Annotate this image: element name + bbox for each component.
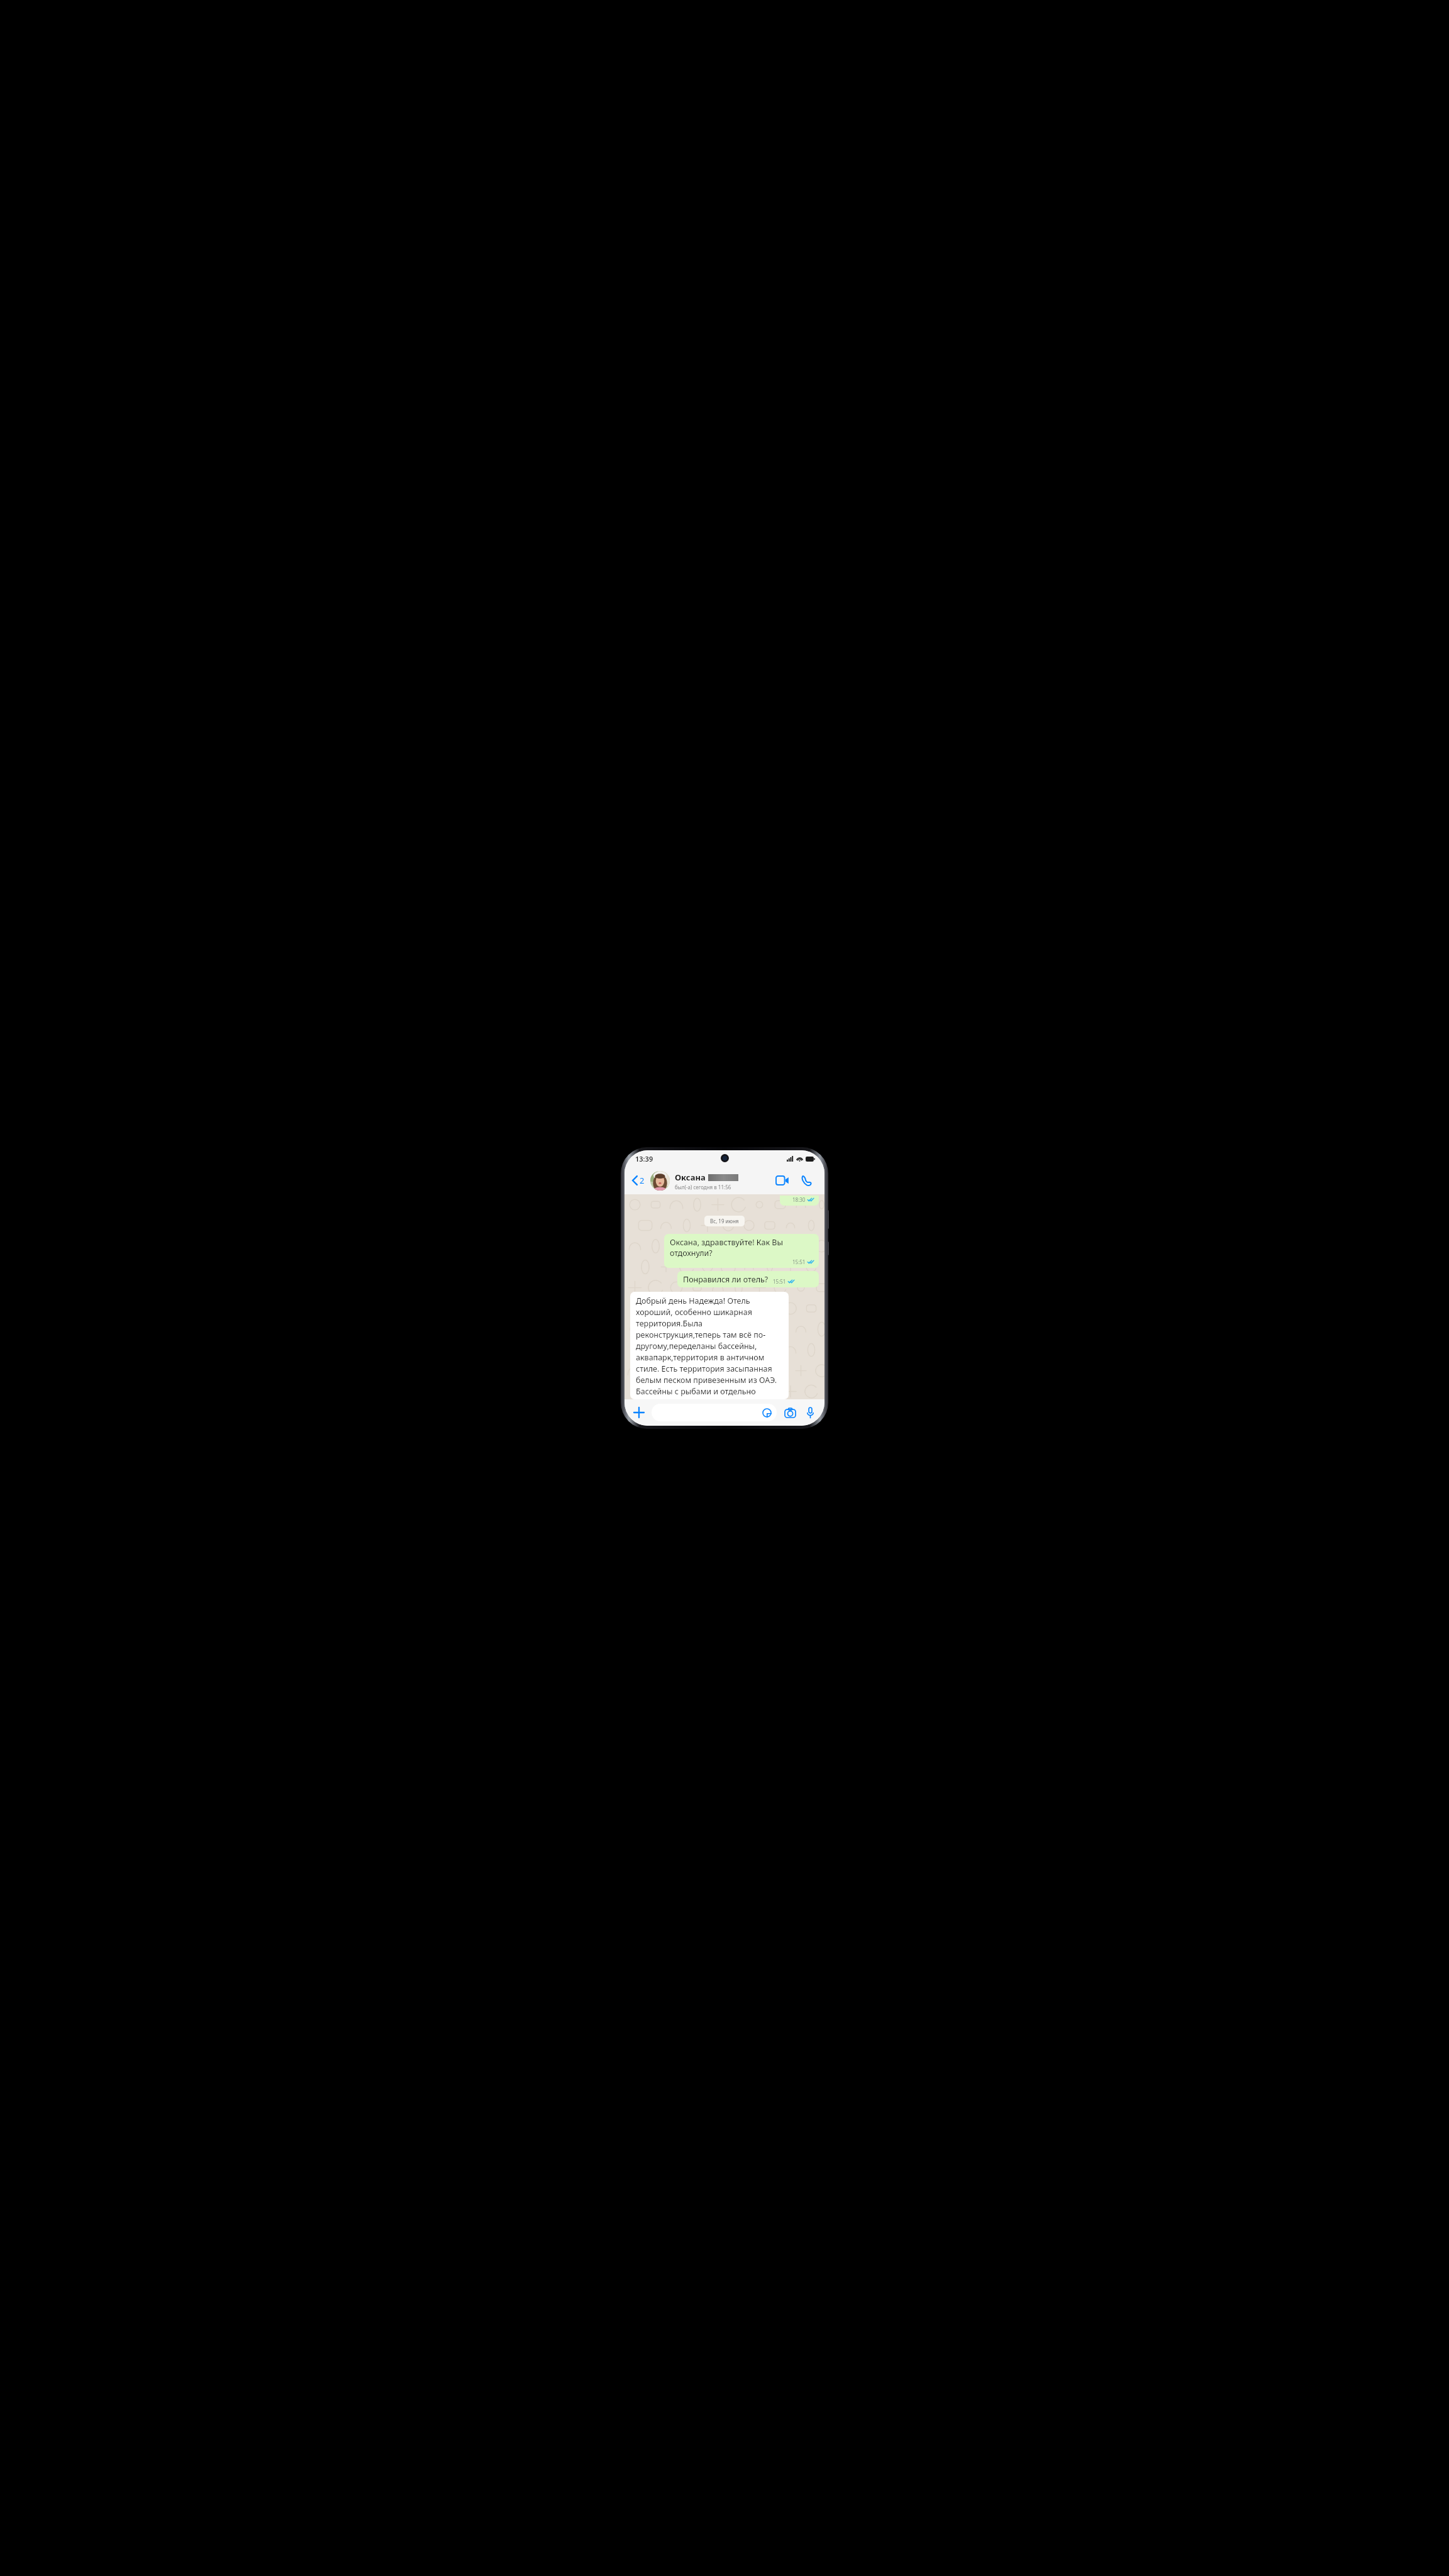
button[interactable]: Voice call bbox=[796, 1170, 817, 1191]
button[interactable]: Attach bbox=[631, 1404, 647, 1421]
staticText: Вс, 19 июня bbox=[710, 1218, 739, 1224]
button[interactable]: Camera bbox=[782, 1404, 798, 1421]
button[interactable]: Back, 2 unread bbox=[630, 1172, 647, 1189]
button[interactable]: Оксана, здравствуйте! Как Вы отдохнули? bbox=[664, 1234, 819, 1268]
button[interactable]: Добрый день Надежда! Отель хороший, особ… bbox=[630, 1292, 789, 1399]
staticText: был(-а) сегодня в 11:56 bbox=[675, 1184, 731, 1191]
button[interactable]: Video call bbox=[772, 1170, 793, 1191]
button[interactable]: Понравился ли отель? bbox=[677, 1271, 819, 1287]
button[interactable] bbox=[652, 1404, 777, 1421]
staticText: 13:39 bbox=[635, 1154, 653, 1163]
staticText: Понравился ли отель? bbox=[683, 1274, 769, 1285]
button[interactable]: 18:30 bbox=[780, 1196, 819, 1206]
staticText: 15:51 bbox=[792, 1258, 806, 1265]
staticText: 15:51 bbox=[773, 1278, 786, 1285]
staticText: 18:30 bbox=[792, 1196, 806, 1203]
button[interactable]: Оксана bbox=[650, 1171, 772, 1191]
staticText: Добрый день Надежда! Отель хороший, особ… bbox=[636, 1296, 784, 1397]
staticText: 2 bbox=[640, 1175, 645, 1186]
button[interactable]: Record voice message bbox=[802, 1404, 818, 1421]
staticText: Оксана bbox=[675, 1172, 706, 1183]
staticText: Оксана, здравствуйте! Как Вы отдохнули? bbox=[670, 1237, 814, 1258]
